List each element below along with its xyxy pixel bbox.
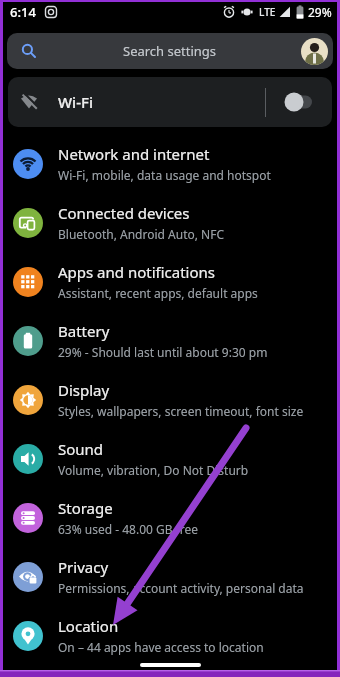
button[interactable]: Battery [0,311,340,370]
button[interactable]: Location [0,606,340,665]
staticText: Permissions, account activity, personal … [58,580,304,596]
staticText: 6:14 [10,3,36,21]
staticText: LTE [259,5,276,19]
staticText: Apps and notifications [58,262,216,282]
button[interactable]: Wi-Fi [8,77,332,127]
staticText: Network and internet [58,144,210,164]
button[interactable]: Sound [0,429,340,488]
button[interactable]: Privacy [0,547,340,606]
staticText: 29% [308,4,332,20]
staticText: Assistant, recent apps, default apps [58,285,258,301]
staticText: Storage [58,498,113,518]
button[interactable]: Network and internet [0,134,340,193]
staticText: On – 44 apps have access to location [58,639,264,655]
button[interactable]: Apps and notifications [0,252,340,311]
staticText: Sound [58,439,104,459]
staticText: Wi-Fi, mobile, data usage and hotspot [58,167,271,183]
staticText: Connected devices [58,203,190,223]
staticText: 63% used - 48.00 GB free [58,521,199,537]
staticText: Display [58,380,110,400]
button[interactable]: Search settings [7,33,333,69]
staticText: Wi-Fi [58,92,93,112]
staticText: Bluetooth, Android Auto, NFC [58,226,224,242]
button[interactable]: Connected devices [0,193,340,252]
staticText: Location [58,616,119,636]
staticText: Styles, wallpapers, screen timeout, font… [58,403,304,419]
staticText: 29% - Should last until about 9:30 pm [58,344,268,360]
staticText: Privacy [58,557,109,577]
staticText: Battery [58,321,110,341]
button[interactable]: Display [0,370,340,429]
staticText: Volume, vibration, Do Not Disturb [58,462,249,478]
staticText: Search settings [123,42,217,60]
button[interactable]: Storage [0,488,340,547]
